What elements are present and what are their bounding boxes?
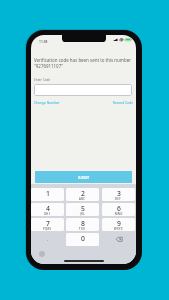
staticText: GHI bbox=[44, 212, 51, 216]
button[interactable]: 4 bbox=[31, 203, 64, 216]
button[interactable]: 7 bbox=[31, 218, 64, 231]
button[interactable]: Resend Code bbox=[101, 99, 133, 105]
staticText: 6 bbox=[117, 204, 121, 213]
staticText: 11:58 bbox=[39, 39, 48, 43]
button[interactable]: Change keyboard bbox=[39, 251, 45, 257]
button[interactable]: 2 bbox=[66, 188, 99, 201]
button[interactable]: 1 bbox=[31, 188, 64, 201]
button[interactable]: Change Number bbox=[34, 99, 60, 105]
staticText: Change Number bbox=[34, 100, 60, 104]
button[interactable]: Backspace bbox=[102, 233, 135, 246]
button[interactable]: 3 bbox=[102, 188, 135, 201]
staticText: WXYZ bbox=[114, 227, 123, 231]
staticText: 9 bbox=[117, 219, 121, 228]
staticText: 4 bbox=[46, 204, 50, 213]
staticText: ABC bbox=[79, 197, 86, 201]
button[interactable]: 6 bbox=[102, 203, 135, 216]
staticText: Resend Code bbox=[101, 100, 133, 104]
staticText: SUBMIT bbox=[78, 176, 90, 180]
button[interactable]: 8 bbox=[66, 218, 99, 231]
button[interactable]: 9 bbox=[102, 218, 135, 231]
staticText: TUV bbox=[79, 227, 86, 231]
staticText: 0 bbox=[81, 234, 85, 243]
staticText: MNO bbox=[115, 212, 123, 216]
staticText: 3 bbox=[117, 189, 121, 198]
staticText: Enter Code bbox=[34, 78, 51, 82]
staticText: Verification code has been sent to this … bbox=[34, 57, 133, 69]
staticText: 5 bbox=[81, 204, 85, 213]
staticText: JKL bbox=[80, 212, 86, 216]
staticText: 1 bbox=[46, 189, 50, 198]
button[interactable] bbox=[34, 84, 132, 96]
staticText: . bbox=[47, 236, 49, 243]
button[interactable]: SUBMIT bbox=[35, 171, 132, 183]
button[interactable]: 0 bbox=[66, 233, 99, 246]
staticText: 7 bbox=[46, 219, 50, 228]
button[interactable]: 5 bbox=[66, 203, 99, 216]
staticText: 8 bbox=[81, 219, 85, 228]
staticText: PQRS bbox=[43, 227, 52, 231]
staticText: 2 bbox=[81, 189, 85, 198]
staticText: DEF bbox=[115, 197, 122, 201]
